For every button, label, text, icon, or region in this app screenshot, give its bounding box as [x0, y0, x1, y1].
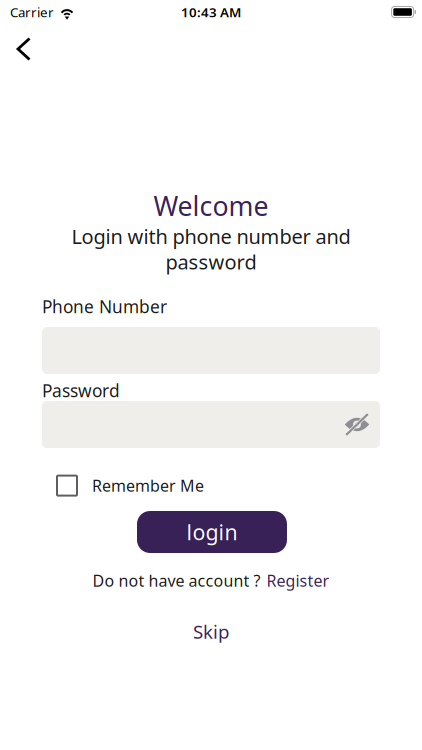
staticText: 10:43 AM [181, 3, 241, 21]
staticText: Do not have account ? [92, 570, 260, 591]
button[interactable]: Remember Me [57, 470, 212, 501]
button[interactable]: Register [266, 570, 329, 591]
button[interactable]: Password [42, 401, 380, 448]
staticText: Password [42, 379, 120, 402]
staticText: Register [266, 570, 329, 591]
button[interactable]: Back [4, 31, 44, 67]
staticText: Login with phone number and [71, 223, 350, 250]
staticText: Welcome [153, 188, 268, 223]
staticText: Skip [193, 619, 229, 644]
staticText: Phone Number [42, 295, 167, 318]
staticText: Carrier [10, 3, 54, 21]
staticText: password [165, 249, 256, 275]
button[interactable]: login [137, 511, 287, 553]
button[interactable]: Skip [193, 619, 229, 644]
staticText: login [186, 518, 237, 546]
button[interactable]: Show password [334, 401, 380, 448]
staticText: Remember Me [92, 475, 204, 496]
